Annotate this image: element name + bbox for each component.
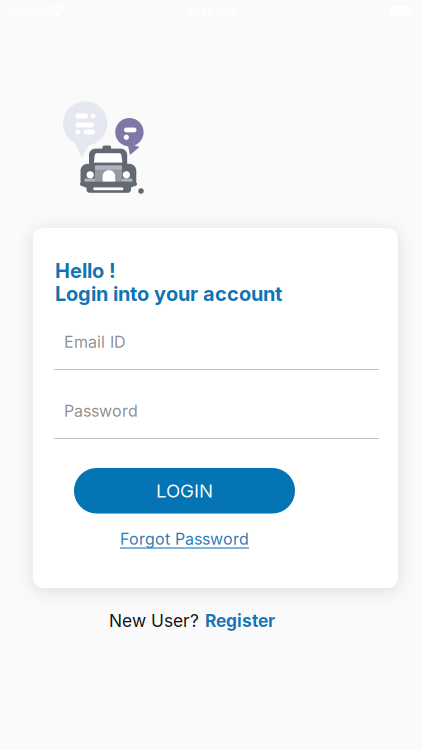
staticText: Email ID — [64, 332, 126, 351]
button[interactable]: Password — [54, 395, 379, 439]
button[interactable]: LOGIN — [74, 468, 295, 513]
staticText: Register — [205, 610, 275, 631]
staticText: LOGIN — [156, 480, 213, 502]
staticText: New User? — [109, 610, 199, 631]
button[interactable]: Email ID — [54, 326, 379, 370]
staticText: Login into your account — [55, 282, 282, 306]
staticText: Password — [64, 401, 138, 420]
button[interactable]: Register — [205, 610, 275, 631]
button[interactable]: Forgot Password — [74, 529, 295, 548]
staticText: Hello ! — [55, 259, 116, 283]
staticText: Forgot Password — [120, 529, 249, 548]
